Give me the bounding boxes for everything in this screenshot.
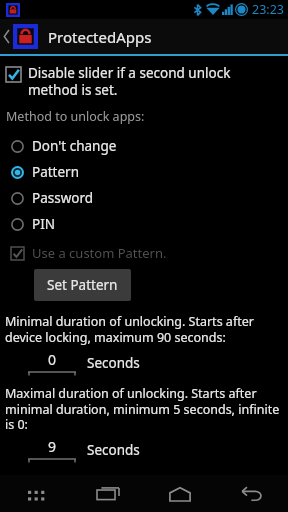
staticText: Password <box>32 189 94 207</box>
staticText: PIN <box>32 215 56 233</box>
staticText: Method to unlock apps: <box>6 108 145 125</box>
button[interactable]: Don't change <box>0 133 288 159</box>
staticText: 23:23 <box>252 1 284 18</box>
button[interactable]: All apps <box>0 488 72 500</box>
staticText: Disable slider if a second unlock method… <box>28 64 282 99</box>
button[interactable]: Set Pattern <box>34 269 131 301</box>
staticText: Seconds <box>87 354 140 372</box>
staticText: Set Pattern <box>47 276 118 294</box>
button[interactable]: Password <box>0 185 288 211</box>
staticText: Maximal duration of unlocking. Starts af… <box>5 385 286 432</box>
staticText: Use a custom Pattern. <box>32 244 167 262</box>
staticText: Pattern <box>32 163 80 181</box>
button[interactable]: PIN <box>0 211 288 237</box>
button[interactable]: Navigate up <box>0 24 40 49</box>
button[interactable]: Back <box>216 486 288 501</box>
button[interactable]: Use a custom Pattern. <box>0 239 288 266</box>
button[interactable]: Recent apps <box>72 486 144 502</box>
staticText: Seconds <box>87 441 140 459</box>
staticText: ProtectedApps <box>48 27 152 47</box>
staticText: Don't change <box>32 137 117 155</box>
button[interactable]: Disable slider if a second unlock method… <box>0 59 288 102</box>
button[interactable]: Pattern <box>0 159 288 185</box>
staticText: Minimal duration of unlocking. Starts af… <box>5 313 284 345</box>
button[interactable]: 9 <box>28 437 76 463</box>
staticText: 0 <box>48 350 57 369</box>
button[interactable]: 0 <box>28 350 76 376</box>
staticText: 9 <box>48 437 57 456</box>
button[interactable]: Home <box>144 487 216 501</box>
